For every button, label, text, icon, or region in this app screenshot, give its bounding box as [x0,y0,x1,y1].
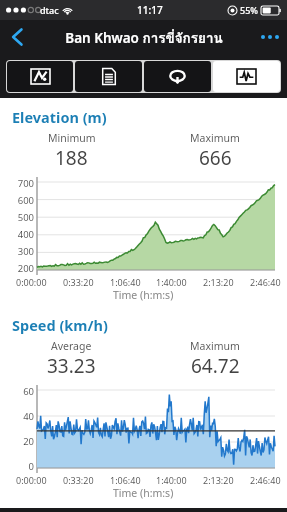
button[interactable]: More options [253,20,287,54]
staticText: 0:00:00 [16,474,47,486]
staticText: 1:40:00 [156,276,187,288]
staticText: 33.23 [47,353,96,379]
staticText: 1:40:00 [156,474,187,486]
staticText: Elevation (m) [12,107,107,127]
staticText: 600 [17,194,34,207]
button[interactable]: Charts [213,61,280,92]
button[interactable]: Laps [144,61,211,92]
staticText: 0 [28,460,34,473]
staticText: Maximum [190,131,240,145]
staticText: Ban Khwao การขี่จักรยาน [65,27,223,48]
staticText: 400 [17,228,34,241]
button[interactable]: Map [7,61,73,92]
staticText: 2:46:40 [250,276,281,288]
staticText: 1:06:40 [110,474,141,486]
staticText: 64.72 [191,353,240,379]
staticText: 188 [55,145,88,171]
staticText: Minimum [48,131,96,145]
staticText: Maximum [190,339,240,353]
staticText: Time (h:m:s) [113,288,174,302]
staticText: 2:46:40 [250,474,281,486]
staticText: Speed (km/h) [12,315,108,335]
staticText: 55% [240,4,258,16]
staticText: 2:13:20 [203,474,234,486]
staticText: dtac [40,4,59,16]
staticText: 700 [17,177,34,190]
staticText: 1:06:40 [110,276,141,288]
staticText: 0:33:20 [63,474,94,486]
staticText: 0:00:00 [16,276,47,288]
staticText: 0:33:20 [63,276,94,288]
staticText: 11:17 [137,3,163,17]
button[interactable]: Details [75,61,142,92]
staticText: 500 [17,211,34,224]
button[interactable]: Back [0,20,34,54]
staticText: 666 [199,145,232,171]
staticText: 200 [17,262,34,275]
staticText: 60 [23,385,34,398]
staticText: Time (h:m:s) [113,486,174,500]
staticText: 20 [23,435,34,448]
staticText: 300 [17,245,34,258]
staticText: 40 [23,410,34,423]
staticText: Average [51,339,92,353]
staticText: 2:13:20 [203,276,234,288]
